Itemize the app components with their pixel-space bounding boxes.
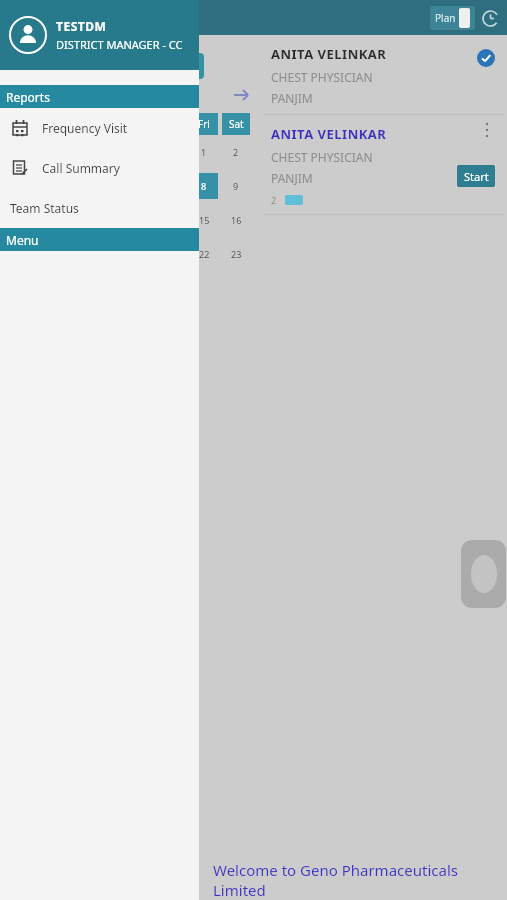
button[interactable]: Confirmed (477, 49, 495, 67)
staticText: TESTDM (56, 18, 107, 34)
button[interactable]: ANITA VELINKAR (255, 35, 503, 115)
staticText: 22 (199, 248, 210, 260)
staticText: 8 (201, 180, 207, 192)
staticText: DISTRICT MANAGER - CC (56, 37, 183, 52)
button[interactable]: 1 (190, 139, 218, 165)
button[interactable] (170, 53, 204, 79)
staticText: Plan (435, 11, 456, 25)
staticText: Frequency Visit (42, 120, 128, 136)
button[interactable]: Fri (190, 113, 218, 135)
button[interactable]: ANITA VELINKAR (255, 115, 503, 215)
staticText: CHEST PHYSICIAN (271, 69, 373, 85)
staticText: Team Status (10, 200, 79, 216)
staticText: Menu (6, 232, 39, 248)
button[interactable]: History (476, 4, 504, 32)
staticText: PANJIM (271, 90, 313, 106)
staticText: PANJIM (271, 170, 313, 186)
staticText: Fri (198, 117, 210, 131)
button[interactable]: 15 (190, 207, 218, 233)
staticText: Sat (229, 117, 244, 131)
button[interactable]: 23 (222, 241, 250, 267)
button[interactable]: Scroll thumb (461, 540, 506, 608)
staticText: 2 (233, 146, 239, 158)
staticText: Start (464, 169, 489, 184)
staticText: 15 (199, 214, 210, 226)
staticText: Welcome to Geno Pharmaceuticals Limited (213, 860, 507, 900)
button[interactable]: More options (480, 121, 494, 139)
button[interactable]: 16 (222, 207, 250, 233)
button[interactable]: Sat (222, 113, 250, 135)
staticText: ANITA VELINKAR (271, 125, 387, 143)
staticText: ANITA VELINKAR (271, 45, 387, 63)
button[interactable]: 22 (190, 241, 218, 267)
button[interactable]: Start (457, 165, 495, 187)
button[interactable]: TESTDM (0, 0, 199, 70)
button[interactable]: Team Status (0, 188, 199, 228)
staticText: 23 (231, 248, 242, 260)
staticText: Reports (6, 89, 50, 105)
staticText: 2 (271, 194, 277, 206)
staticText: Call Summary (42, 160, 120, 176)
button[interactable]: Call Summary (0, 148, 199, 188)
button[interactable]: Menu (0, 228, 199, 251)
staticText: 16 (231, 214, 242, 226)
button[interactable]: Plan (430, 6, 475, 30)
staticText: 1 (201, 146, 207, 158)
staticText: 9 (233, 180, 239, 192)
button[interactable]: Frequency Visit (0, 108, 199, 148)
button[interactable]: 9 (222, 173, 250, 199)
button[interactable]: 8 (190, 173, 218, 199)
button[interactable] (285, 195, 303, 205)
button[interactable]: 2 (222, 139, 250, 165)
staticText: CHEST PHYSICIAN (271, 149, 373, 165)
button[interactable]: Reports (0, 85, 199, 108)
